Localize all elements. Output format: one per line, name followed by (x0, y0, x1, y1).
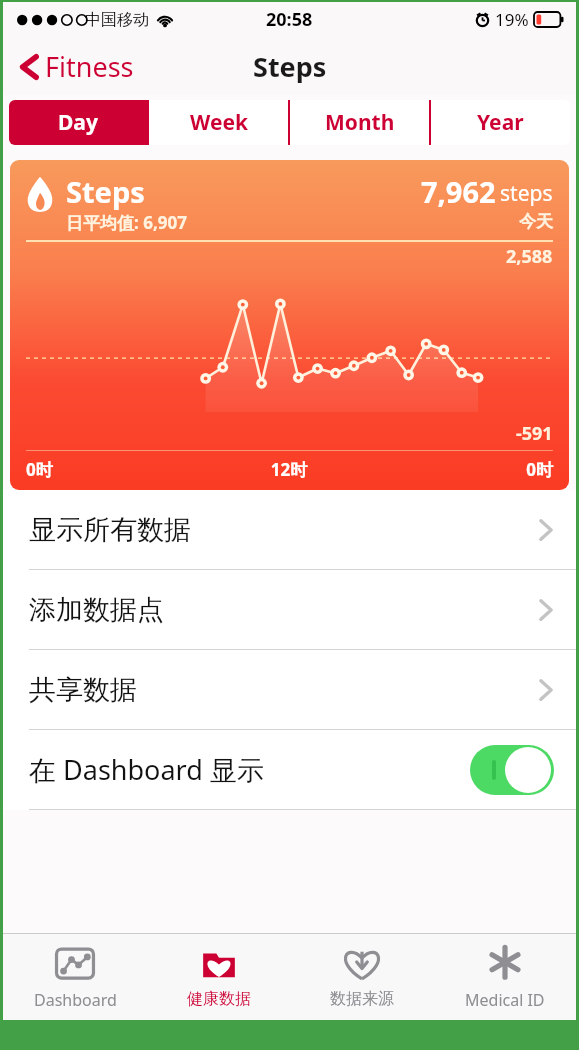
button[interactable]: 健康数据 (147, 934, 290, 1020)
staticText: Day (58, 108, 98, 137)
button[interactable]: Dashboard (3, 934, 147, 1020)
staticText: Month (325, 108, 395, 137)
button[interactable]: Steps (10, 160, 569, 490)
staticText: 数据来源 (330, 989, 394, 1009)
staticText: 在 Dashboard 显示 (29, 751, 470, 788)
staticText: 19% (495, 8, 529, 31)
button[interactable]: 在 Dashboard 显示 (3, 730, 576, 809)
staticText: 共享数据 (29, 673, 538, 707)
button[interactable]: Show in Dashboard toggle (470, 745, 554, 795)
staticText: 0时 (26, 458, 201, 481)
button[interactable]: 共享数据 (3, 650, 576, 729)
staticText: 中国移动 (85, 10, 149, 30)
staticText: 0时 (377, 458, 553, 481)
staticText: Week (190, 108, 248, 137)
button[interactable]: Week (149, 100, 288, 145)
staticText: 添加数据点 (29, 593, 538, 627)
staticText: Steps (253, 48, 327, 85)
button[interactable]: 数据来源 (290, 934, 433, 1020)
staticText: steps (500, 179, 553, 208)
button[interactable]: Fitness (13, 44, 140, 89)
button[interactable]: Year (431, 100, 570, 145)
staticText: 7,962 (421, 172, 496, 211)
staticText: 20:58 (266, 7, 313, 32)
staticText: Fitness (45, 48, 134, 85)
button[interactable]: Day (9, 100, 147, 145)
button[interactable]: 显示所有数据 (3, 490, 576, 569)
staticText: 显示所有数据 (29, 513, 538, 547)
staticText: Dashboard (34, 989, 117, 1011)
staticText: Year (477, 108, 524, 137)
staticText: -591 (516, 421, 553, 446)
staticText: 今天 (519, 211, 553, 232)
button[interactable]: Medical ID (433, 934, 576, 1020)
staticText: 12时 (201, 458, 377, 481)
button[interactable]: Month (290, 100, 429, 145)
staticText: Medical ID (465, 989, 545, 1011)
staticText: Steps (66, 172, 145, 211)
staticText: 日平均值: 6,907 (66, 211, 187, 234)
staticText: 健康数据 (187, 989, 251, 1009)
staticText: 2,588 (506, 244, 553, 269)
button[interactable]: 添加数据点 (3, 570, 576, 649)
